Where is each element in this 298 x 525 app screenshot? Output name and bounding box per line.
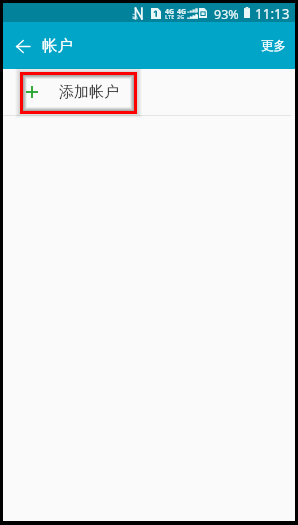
staticText: 4G [177,7,187,17]
button[interactable]: 更多 [250,27,295,65]
staticText: 添加帐户 [59,83,119,102]
staticText: 93% [214,6,239,23]
staticText: 2G [177,13,185,20]
staticText: 帐户 [42,36,73,56]
staticText: 更多 [261,38,286,54]
button[interactable]: Back [8,31,38,61]
staticText: 4G [165,7,175,17]
button[interactable]: 添加帐户 [3,69,295,115]
staticText: LTE [165,13,175,20]
staticText: 11:13 [255,5,290,23]
